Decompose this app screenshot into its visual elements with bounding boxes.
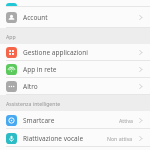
button[interactable]: Smartcare: [0, 111, 150, 129]
staticText: Assistenza intelligente: [6, 100, 61, 107]
staticText: Account: [23, 13, 136, 22]
button[interactable]: Gestione applicazioni: [0, 44, 150, 61]
button[interactable]: Elemento precedente: [0, 0, 150, 7]
button[interactable]: Altro: [0, 78, 150, 95]
staticText: Smartcare: [23, 116, 119, 125]
button[interactable]: Riattivazione vocale: [0, 129, 150, 147]
staticText: Non attiva: [107, 135, 133, 142]
button[interactable]: App in rete: [0, 61, 150, 78]
staticText: App in rete: [23, 65, 136, 74]
staticText: Attiva: [119, 117, 133, 124]
staticText: Riattivazione vocale: [23, 134, 107, 143]
button[interactable]: Account: [0, 7, 150, 28]
staticText: Altro: [23, 82, 136, 91]
staticText: App: [6, 33, 16, 40]
staticText: Gestione applicazioni: [23, 48, 136, 57]
